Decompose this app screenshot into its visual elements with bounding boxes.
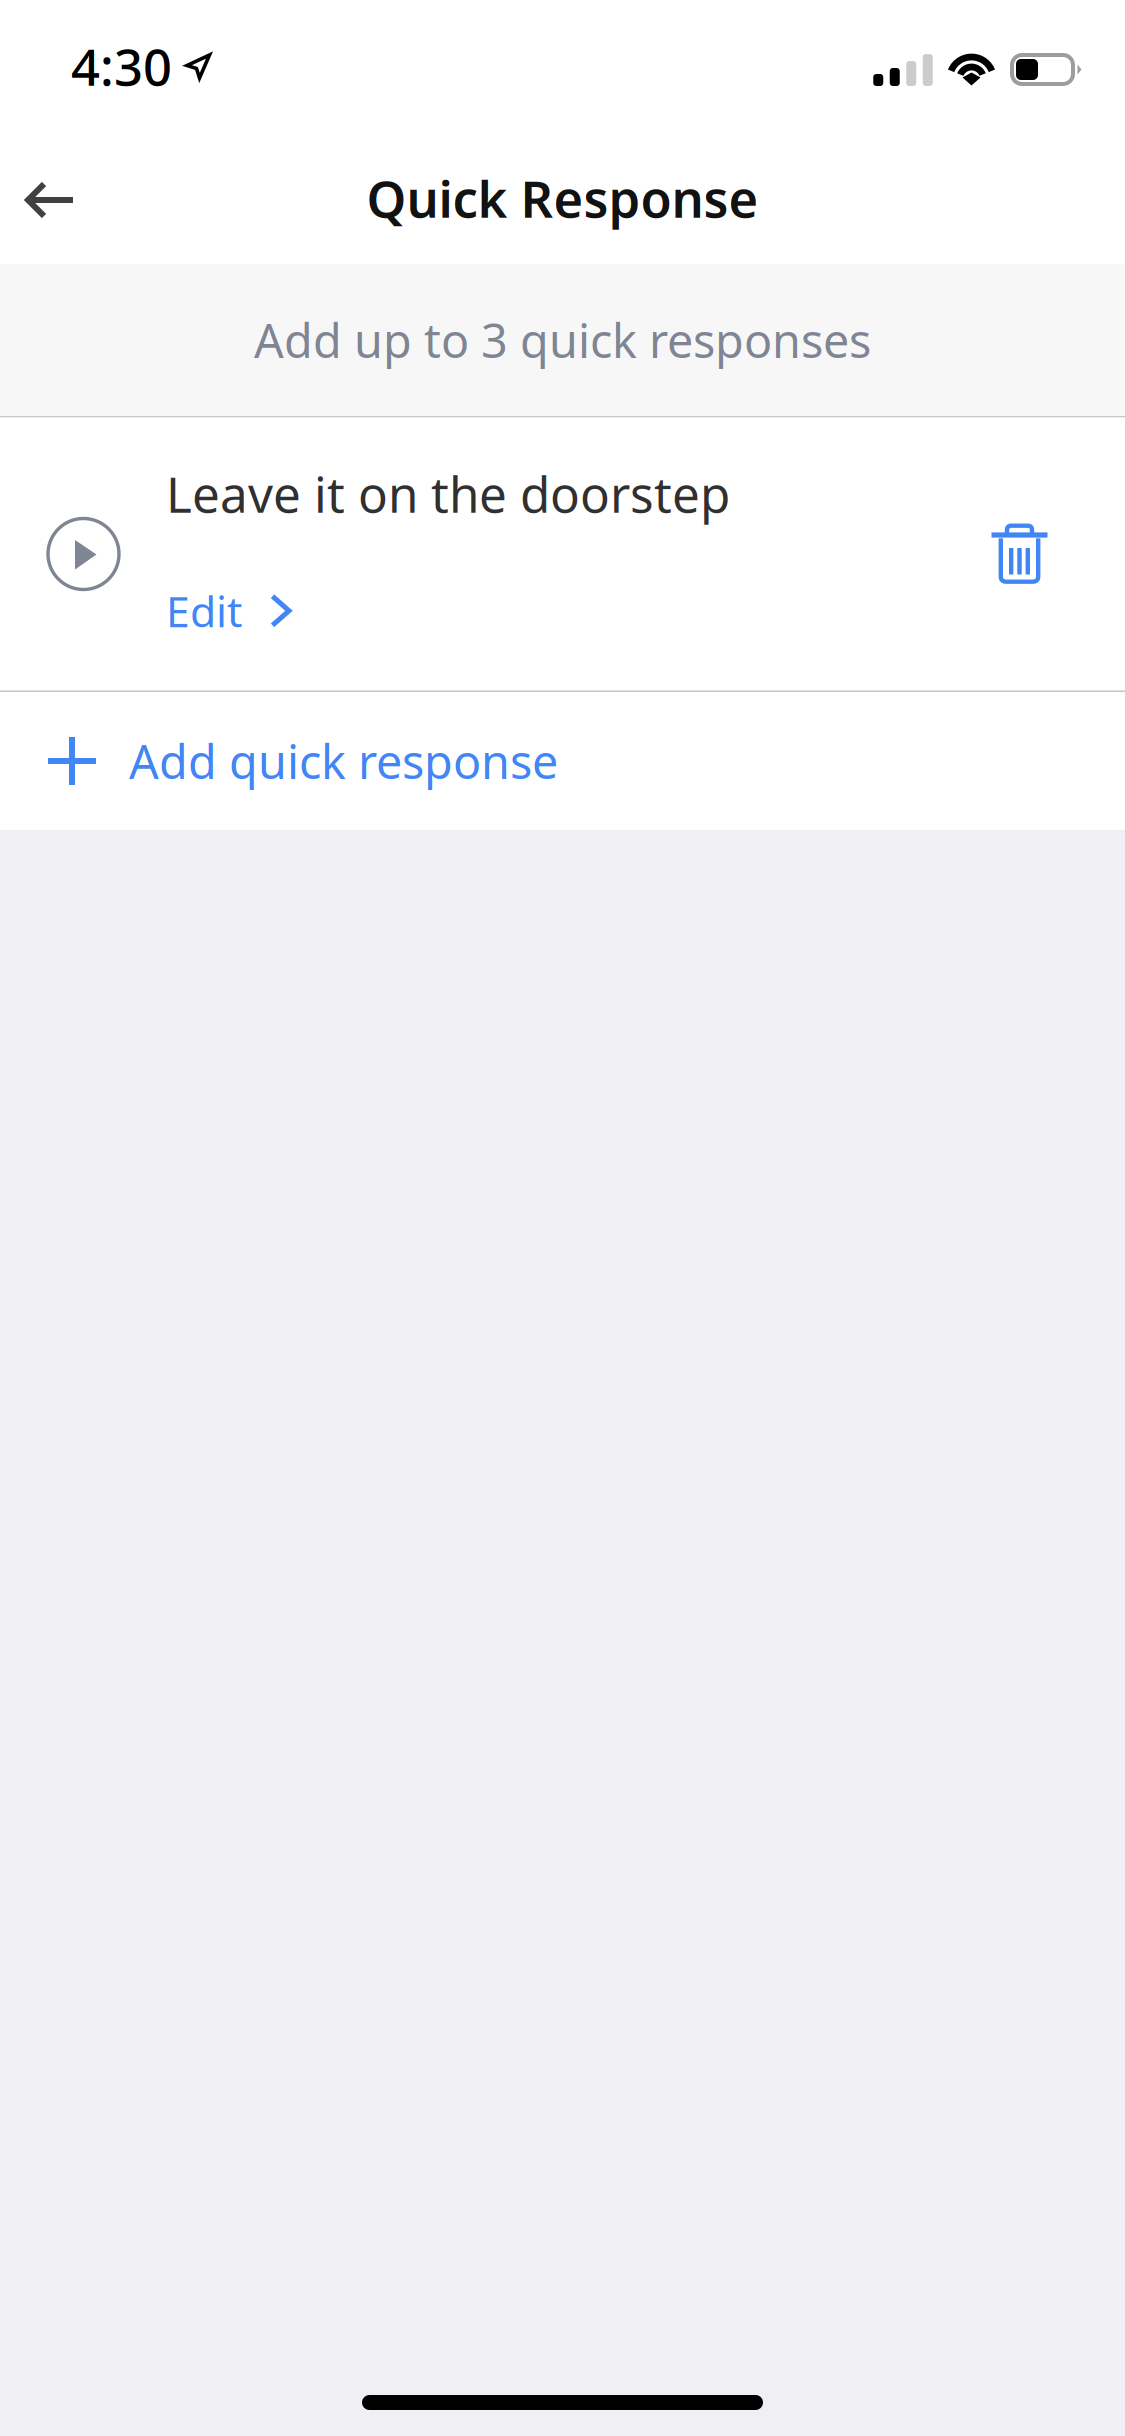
staticText: Leave it on the doorstep	[166, 461, 730, 526]
staticText: 4:30	[71, 32, 172, 100]
button[interactable]: Delete	[963, 497, 1125, 610]
button[interactable]: Add quick response	[0, 692, 1125, 830]
button[interactable]: Edit	[166, 582, 293, 639]
button[interactable]: Back	[0, 153, 108, 243]
button[interactable]: Play	[0, 494, 131, 613]
staticText: Add up to 3 quick responses	[254, 309, 871, 371]
staticText: Edit	[166, 582, 242, 639]
staticText: Quick Response	[366, 164, 758, 232]
staticText: Add quick response	[129, 730, 558, 792]
